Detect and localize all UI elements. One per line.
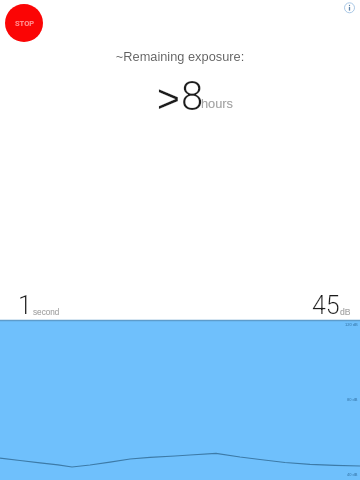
staticText: ~Remaining exposure: <box>0 49 360 63</box>
staticText: 8 <box>181 73 204 120</box>
staticText: dB <box>340 307 351 317</box>
staticText: hours <box>201 96 234 110</box>
button[interactable]: Info <box>338 0 360 22</box>
staticText: > <box>157 77 180 121</box>
staticText: 120 dB <box>345 322 358 326</box>
button[interactable]: STOP <box>5 4 43 42</box>
staticText: 45 <box>312 291 340 320</box>
staticText: STOP <box>15 19 35 28</box>
staticText: 40 dB <box>347 472 358 476</box>
staticText: second <box>33 308 60 317</box>
staticText: 80 dB <box>347 397 358 401</box>
staticText: 1 <box>18 291 32 320</box>
